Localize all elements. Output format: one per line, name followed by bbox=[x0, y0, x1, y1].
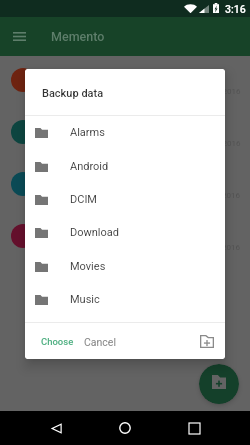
button[interactable]: Download bbox=[25, 216, 225, 249]
button[interactable]: Create new folder bbox=[195, 329, 219, 353]
button[interactable]: Home bbox=[114, 417, 136, 439]
staticText: 3:16 bbox=[225, 3, 246, 15]
staticText: 11 Aug 2016 bbox=[195, 243, 241, 252]
staticText: Ideas bbox=[47, 230, 74, 243]
button[interactable]: Recipes bbox=[0, 158, 250, 210]
button[interactable]: Shopping list bbox=[0, 54, 250, 106]
staticText: 02 Sep 2016 bbox=[196, 139, 241, 148]
staticText: 14 Sep 2016 bbox=[196, 87, 241, 96]
button[interactable]: Android bbox=[25, 150, 225, 183]
button[interactable]: Ideas bbox=[0, 210, 250, 262]
button[interactable]: Movies bbox=[25, 250, 225, 283]
staticText: 28 Aug 2016 bbox=[195, 191, 241, 200]
staticText: Memento bbox=[51, 29, 105, 44]
staticText: Download bbox=[70, 226, 119, 239]
staticText: Work notes bbox=[47, 126, 103, 139]
staticText: DCIM bbox=[70, 193, 97, 206]
staticText: Choose bbox=[41, 336, 74, 347]
button[interactable]: Cancel bbox=[78, 332, 120, 352]
button[interactable]: Back bbox=[45, 417, 67, 439]
button[interactable]: Choose bbox=[37, 332, 78, 351]
button[interactable]: Music bbox=[25, 283, 225, 316]
staticText: Movies bbox=[70, 260, 106, 273]
button[interactable]: Create new folder bbox=[199, 364, 239, 404]
staticText: Android bbox=[70, 160, 109, 173]
button[interactable]: Work notes bbox=[0, 106, 250, 158]
button[interactable]: Recent apps bbox=[183, 417, 205, 439]
button[interactable]: Alarms bbox=[25, 116, 225, 149]
staticText: Backup data bbox=[42, 87, 104, 100]
staticText: Cancel bbox=[84, 336, 116, 348]
staticText: Alarms bbox=[70, 126, 105, 139]
button[interactable]: Open navigation drawer bbox=[6, 23, 32, 49]
staticText: Music bbox=[70, 293, 100, 306]
button[interactable]: DCIM bbox=[25, 183, 225, 216]
